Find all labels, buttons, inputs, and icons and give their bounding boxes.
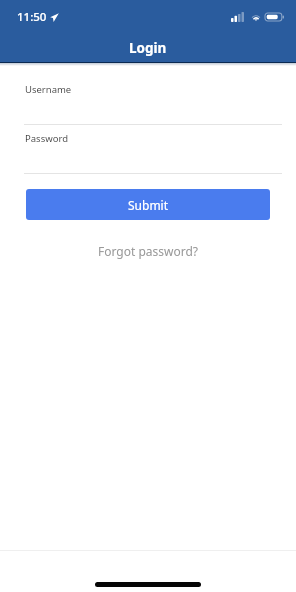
staticText: Password (25, 132, 68, 145)
button[interactable]: Forgot password? (0, 241, 296, 261)
other: Cellular signal strength (231, 12, 244, 22)
button[interactable]: Username (24, 75, 282, 125)
staticText: Submit (128, 197, 169, 213)
staticText: Username (25, 83, 72, 96)
other: Battery level (265, 13, 284, 21)
button[interactable]: Submit (26, 189, 270, 220)
staticText: Forgot password? (98, 243, 199, 259)
staticText: 11:50 (17, 9, 47, 25)
other: Wi-Fi connected (251, 13, 261, 21)
button[interactable]: Password (24, 124, 282, 174)
staticText: Login (129, 39, 167, 57)
